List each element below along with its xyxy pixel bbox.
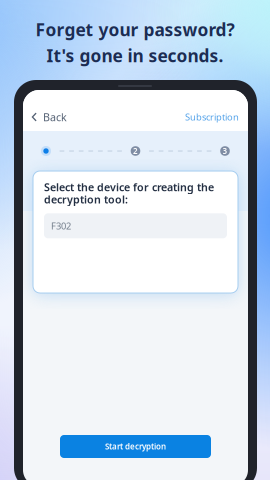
staticText: Subscription <box>185 111 239 123</box>
staticText: 2 <box>133 146 138 156</box>
staticText: It's gone in seconds. <box>46 44 223 67</box>
staticText: Select the device for creating the decry… <box>44 180 214 206</box>
staticText: Back <box>43 110 67 124</box>
staticText: Forget your password? <box>35 18 234 41</box>
staticText: 3 <box>222 146 227 156</box>
staticText: F302 <box>51 220 71 232</box>
button[interactable]: Start decryption <box>60 435 211 458</box>
button[interactable]: Subscription <box>176 106 248 128</box>
button[interactable]: Back <box>23 106 75 128</box>
staticText: Start decryption <box>105 441 166 452</box>
